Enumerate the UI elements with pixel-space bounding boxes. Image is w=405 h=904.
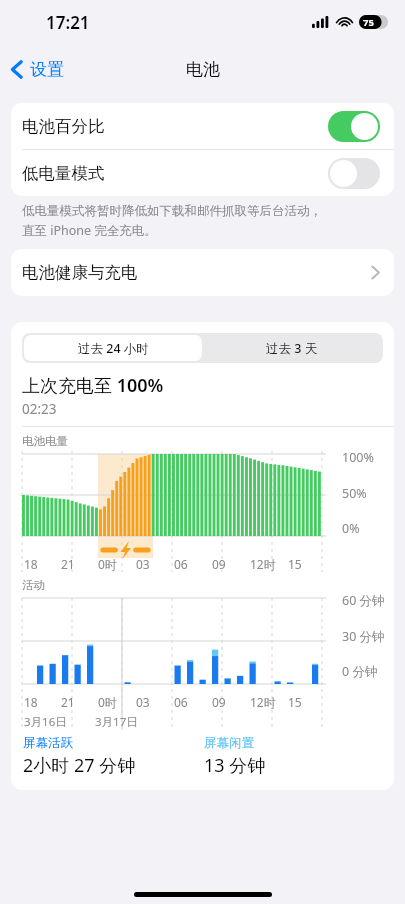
staticText: 12时 — [250, 556, 276, 572]
staticText: 100% — [342, 449, 374, 466]
staticText: 12时 — [250, 694, 276, 710]
staticText: 过去 24 小时 — [78, 340, 149, 357]
staticText: 03 — [136, 556, 150, 572]
staticText: 上次充电至 100% — [22, 373, 164, 398]
staticText: 3月17日 — [95, 714, 138, 730]
staticText: 02:23 — [22, 400, 57, 418]
staticText: 75 — [363, 16, 374, 29]
button[interactable]: 电池百分比 — [11, 103, 394, 149]
staticText: 21 — [61, 694, 75, 710]
staticText: 15 — [288, 694, 302, 710]
staticText: 0 分钟 — [342, 663, 378, 680]
button[interactable]: 电池百分比 — [328, 111, 380, 142]
staticText: 直至 iPhone 完全充电。 — [22, 222, 157, 239]
staticText: 3月16日 — [24, 714, 67, 730]
staticText: 电池 — [186, 59, 220, 80]
staticText: 60 分钟 — [342, 592, 385, 609]
staticText: 低电量模式将暂时降低如下载和邮件抓取等后台活动， — [22, 203, 322, 219]
staticText: 0时 — [98, 556, 117, 572]
staticText: 电池健康与充电 — [22, 262, 371, 283]
staticText: 17:21 — [46, 11, 90, 34]
staticText: 屏幕闲置 — [204, 735, 254, 751]
staticText: 21 — [61, 556, 75, 572]
staticText: 50% — [342, 485, 367, 502]
staticText: 09 — [212, 694, 226, 710]
button[interactable]: 过去 3 天 — [202, 335, 381, 361]
button[interactable]: 低电量模式 — [11, 150, 394, 196]
staticText: 设置 — [30, 59, 64, 80]
staticText: 13 分钟 — [204, 753, 266, 778]
button[interactable]: 电池健康与充电 — [11, 249, 394, 296]
staticText: 18 — [24, 694, 38, 710]
staticText: 0时 — [98, 694, 117, 710]
button[interactable]: 低电量模式 — [328, 158, 380, 189]
staticText: 2小时 27 分钟 — [23, 753, 136, 778]
staticText: 03 — [136, 694, 150, 710]
button[interactable]: 过去 24 小时 — [24, 335, 202, 361]
staticText: 15 — [288, 556, 302, 572]
button[interactable]: 设置 — [6, 53, 69, 86]
staticText: 09 — [212, 556, 226, 572]
staticText: 活动 — [22, 578, 45, 592]
staticText: 屏幕活跃 — [23, 735, 73, 751]
staticText: 18 — [24, 556, 38, 572]
staticText: 06 — [174, 694, 188, 710]
staticText: 06 — [174, 556, 188, 572]
staticText: 电池百分比 — [22, 116, 328, 137]
staticText: 过去 3 天 — [266, 340, 318, 357]
staticText: 30 分钟 — [342, 628, 385, 645]
staticText: 电池电量 — [22, 434, 68, 448]
staticText: 低电量模式 — [22, 163, 328, 184]
staticText: 0% — [342, 520, 360, 537]
